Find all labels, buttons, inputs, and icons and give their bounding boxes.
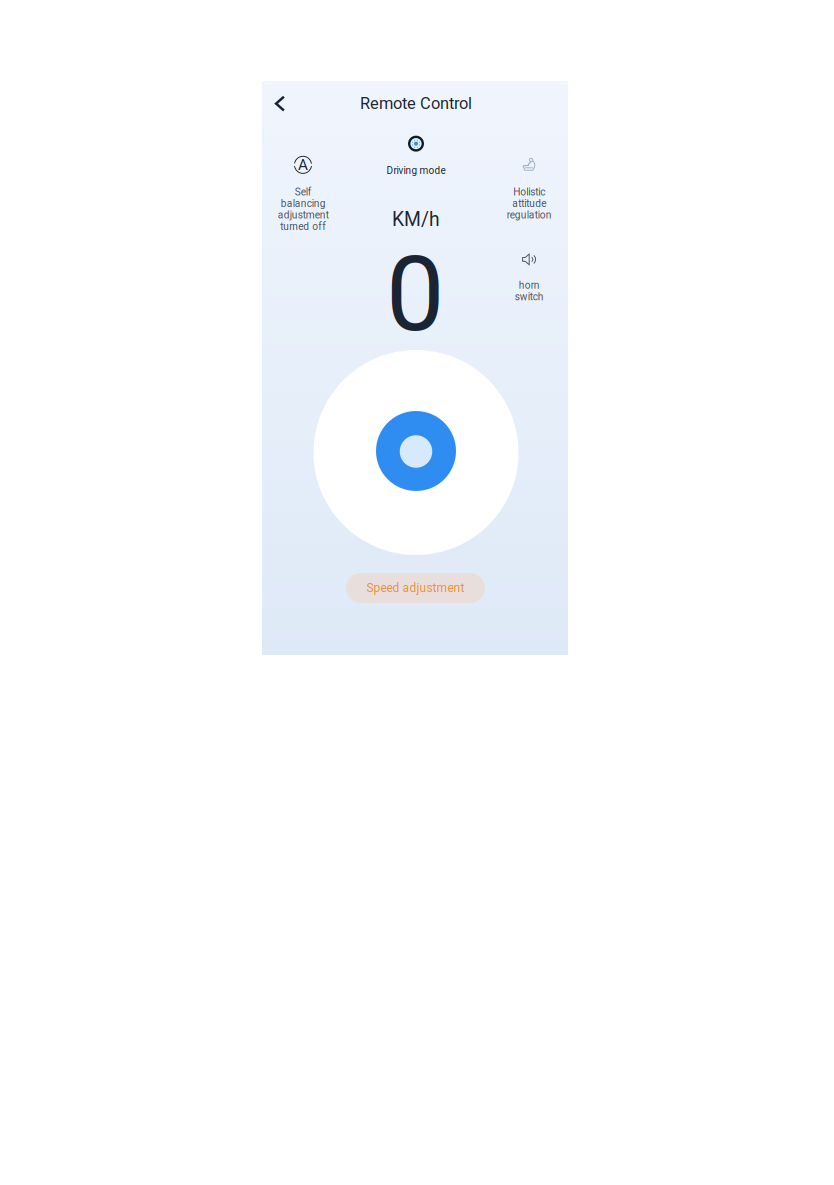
- button[interactable]: Back: [264, 88, 296, 120]
- button[interactable]: horn switch: [502, 248, 556, 304]
- button[interactable]: Speed adjustment: [346, 573, 485, 603]
- staticText: A: [298, 156, 308, 174]
- button[interactable]: Holistic attitude regulation: [499, 153, 559, 223]
- staticText: Driving mode: [386, 165, 445, 176]
- staticText: Speed adjustment: [366, 581, 464, 595]
- staticText: Holistic attitude regulation: [506, 186, 551, 221]
- staticText: 0: [386, 234, 444, 355]
- staticText: Remote Control: [360, 94, 472, 113]
- staticText: KM/h: [392, 208, 440, 231]
- staticText: horn switch: [514, 279, 543, 303]
- staticText: Self balancing adjustment turned off: [277, 186, 328, 232]
- button[interactable]: A: [272, 152, 334, 236]
- button[interactable]: Direction joystick: [313, 350, 518, 555]
- button[interactable]: Driving mode: [371, 135, 461, 177]
